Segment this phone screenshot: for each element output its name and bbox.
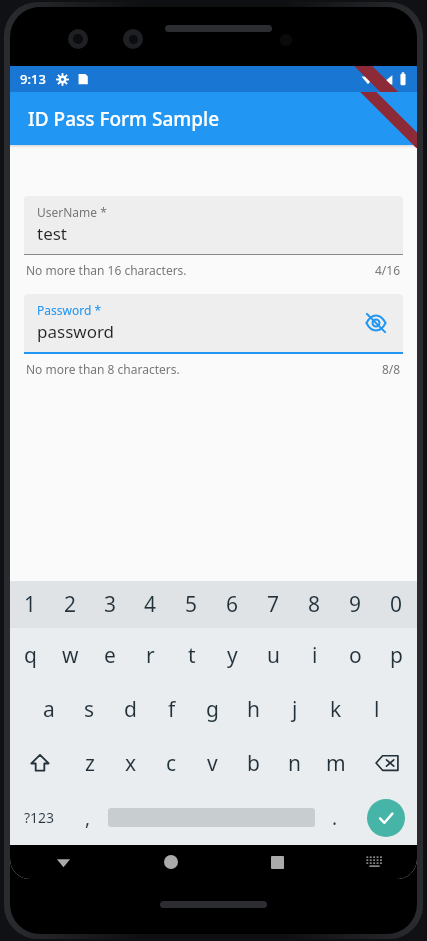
button[interactable]: 0 [376, 581, 417, 628]
button[interactable]: a [29, 682, 69, 736]
staticText: 9 [349, 590, 362, 619]
button[interactable]: , [68, 790, 108, 845]
staticText: No more than 16 characters. [26, 262, 187, 278]
staticText: ?123 [24, 808, 55, 827]
button[interactable]: m [315, 736, 356, 790]
staticText: h [247, 695, 260, 724]
staticText: m [326, 749, 346, 778]
staticText: UserName * [37, 204, 107, 220]
button[interactable]: Enter [355, 790, 417, 845]
button[interactable]: 6 [212, 581, 253, 628]
staticText: 7 [267, 590, 280, 619]
staticText: 1 [24, 590, 37, 619]
button[interactable]: 7 [253, 581, 294, 628]
button[interactable]: 9 [335, 581, 376, 628]
staticText: q [24, 641, 37, 670]
staticText: k [330, 695, 342, 724]
staticText: No more than 8 characters. [26, 361, 180, 377]
staticText: f [168, 695, 176, 724]
staticText: t [188, 641, 196, 670]
staticText: 0 [390, 590, 403, 619]
staticText: , [85, 805, 91, 831]
button[interactable]: 2 [50, 581, 90, 628]
button[interactable]: h [233, 682, 274, 736]
button[interactable]: e [90, 628, 130, 682]
staticText: s [84, 695, 95, 724]
button[interactable]: z [70, 736, 110, 790]
staticText: v [207, 749, 218, 778]
button[interactable]: r [130, 628, 171, 682]
staticText: 6 [226, 590, 239, 619]
staticText: 8/8 [382, 361, 401, 377]
button[interactable]: 5 [171, 581, 212, 628]
button[interactable]: q [10, 628, 50, 682]
staticText: i [312, 641, 318, 670]
staticText: p [390, 641, 403, 670]
button[interactable]: Home [117, 845, 224, 879]
staticText: z [85, 749, 95, 778]
staticText: e [104, 641, 116, 670]
button[interactable]: ?123 [10, 790, 68, 845]
button[interactable]: v [192, 736, 233, 790]
staticText: n [288, 749, 301, 778]
button[interactable]: c [151, 736, 192, 790]
button[interactable]: t [171, 628, 212, 682]
staticText: 9:13 [20, 70, 46, 88]
staticText: test [37, 222, 68, 245]
staticText: 3 [104, 590, 117, 619]
button[interactable]: f [151, 682, 192, 736]
button[interactable]: 1 [10, 581, 50, 628]
staticText: b [247, 749, 260, 778]
button[interactable]: Password * [24, 294, 403, 352]
button[interactable]: x [110, 736, 151, 790]
staticText: x [125, 749, 137, 778]
staticText: 8 [308, 590, 321, 619]
staticText: g [206, 695, 219, 724]
button[interactable]: g [192, 682, 233, 736]
button[interactable]: Space [108, 790, 315, 845]
button[interactable]: 3 [90, 581, 130, 628]
staticText: d [124, 695, 137, 724]
button[interactable]: w [50, 628, 90, 682]
button[interactable]: l [356, 682, 397, 736]
staticText: 5 [185, 590, 198, 619]
staticText: Password * [37, 302, 102, 318]
staticText: . [332, 805, 338, 831]
staticText: o [349, 641, 362, 670]
staticText: r [146, 641, 155, 670]
button[interactable]: Back [10, 845, 117, 879]
button[interactable]: y [212, 628, 253, 682]
button[interactable]: Toggle password visibility [359, 306, 393, 340]
staticText: 4/16 [375, 262, 401, 278]
button[interactable]: d [110, 682, 151, 736]
button[interactable]: Recent apps [224, 845, 331, 879]
button[interactable]: 4 [130, 581, 171, 628]
staticText: j [292, 695, 298, 724]
staticText: w [62, 641, 79, 670]
button[interactable]: Shift [10, 736, 70, 790]
button[interactable]: n [274, 736, 315, 790]
button[interactable]: p [376, 628, 417, 682]
button[interactable]: u [253, 628, 294, 682]
button[interactable]: k [315, 682, 356, 736]
staticText: c [166, 749, 177, 778]
button[interactable]: o [335, 628, 376, 682]
button[interactable]: Switch keyboard [331, 845, 417, 879]
staticText: a [43, 695, 55, 724]
button[interactable]: 8 [294, 581, 335, 628]
button[interactable]: b [233, 736, 274, 790]
staticText: 4 [144, 590, 157, 619]
button[interactable]: UserName * [24, 196, 403, 254]
button[interactable]: . [315, 790, 355, 845]
staticText: ID Pass Form Sample [28, 106, 220, 132]
button[interactable]: i [294, 628, 335, 682]
staticText: password [37, 320, 115, 343]
staticText: 2 [64, 590, 77, 619]
button[interactable]: j [274, 682, 315, 736]
button[interactable]: s [69, 682, 110, 736]
staticText: l [374, 695, 380, 724]
button[interactable]: Backspace [356, 736, 417, 790]
staticText: y [227, 641, 238, 670]
staticText: u [267, 641, 280, 670]
